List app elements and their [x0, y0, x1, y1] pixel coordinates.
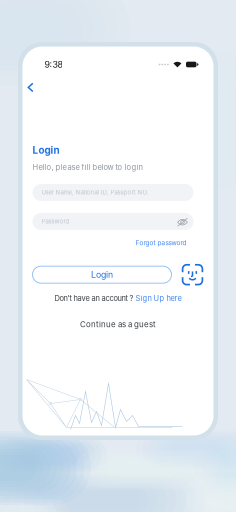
staticText: Login — [91, 269, 113, 280]
staticText: Hello, please fill below to login — [32, 163, 142, 172]
staticText: Sign Up here — [135, 294, 181, 303]
staticText: Continue as a guest — [80, 320, 156, 329]
staticText: 9:38 — [44, 59, 62, 70]
button[interactable]: Face ID — [181, 264, 203, 286]
button[interactable]: Login — [32, 266, 171, 283]
staticText: Don't have an account ? — [54, 294, 135, 303]
button[interactable]: Forgot password — [135, 239, 186, 247]
button[interactable]: Back — [23, 78, 38, 96]
button[interactable]: Continue as a guest — [32, 320, 203, 329]
button[interactable]: Sign Up here — [135, 294, 181, 303]
staticText: Forgot password — [135, 239, 186, 247]
staticText: Login — [32, 144, 59, 156]
staticText: Password — [41, 218, 69, 225]
staticText: User Name, National ID, Passport NO. — [41, 189, 148, 196]
